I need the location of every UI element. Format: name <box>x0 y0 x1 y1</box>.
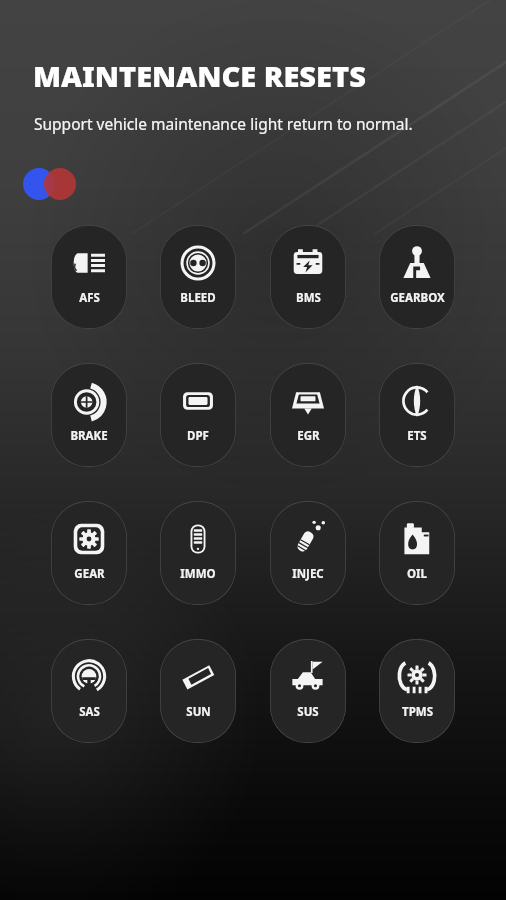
button[interactable]: TPMS <box>379 639 455 743</box>
button[interactable]: INJEC <box>270 501 346 605</box>
button[interactable]: BMS <box>270 225 346 329</box>
staticText: DPF <box>187 428 209 444</box>
staticText: OIL <box>407 566 427 582</box>
button[interactable]: SAS <box>51 639 127 743</box>
staticText: BMS <box>296 290 321 306</box>
staticText: ETS <box>407 428 427 444</box>
staticText: SUS <box>297 704 319 720</box>
button[interactable]: DPF <box>160 363 236 467</box>
button[interactable]: GEARBOX <box>379 225 455 329</box>
staticText: GEARBOX <box>390 290 445 306</box>
button[interactable]: EGR <box>270 363 346 467</box>
staticText: INJEC <box>292 566 324 582</box>
staticText: TPMS <box>402 704 433 720</box>
staticText: GEAR <box>74 566 105 582</box>
button[interactable]: IMMO <box>160 501 236 605</box>
button[interactable]: AFS <box>51 225 127 329</box>
staticText: MAINTENANCE RESETS <box>33 56 366 95</box>
staticText: EGR <box>297 428 320 444</box>
staticText: SUN <box>186 704 211 720</box>
staticText: Support vehicle maintenance light return… <box>34 113 413 134</box>
staticText: BLEED <box>180 290 216 306</box>
button[interactable]: GEAR <box>51 501 127 605</box>
button[interactable]: ETS <box>379 363 455 467</box>
staticText: IMMO <box>180 566 216 582</box>
button[interactable]: OIL <box>379 501 455 605</box>
staticText: SAS <box>79 704 100 720</box>
button[interactable]: SUN <box>160 639 236 743</box>
button[interactable]: BRAKE <box>51 363 127 467</box>
button[interactable]: BLEED <box>160 225 236 329</box>
staticText: AFS <box>79 290 100 306</box>
button[interactable]: SUS <box>270 639 346 743</box>
staticText: BRAKE <box>70 428 108 444</box>
